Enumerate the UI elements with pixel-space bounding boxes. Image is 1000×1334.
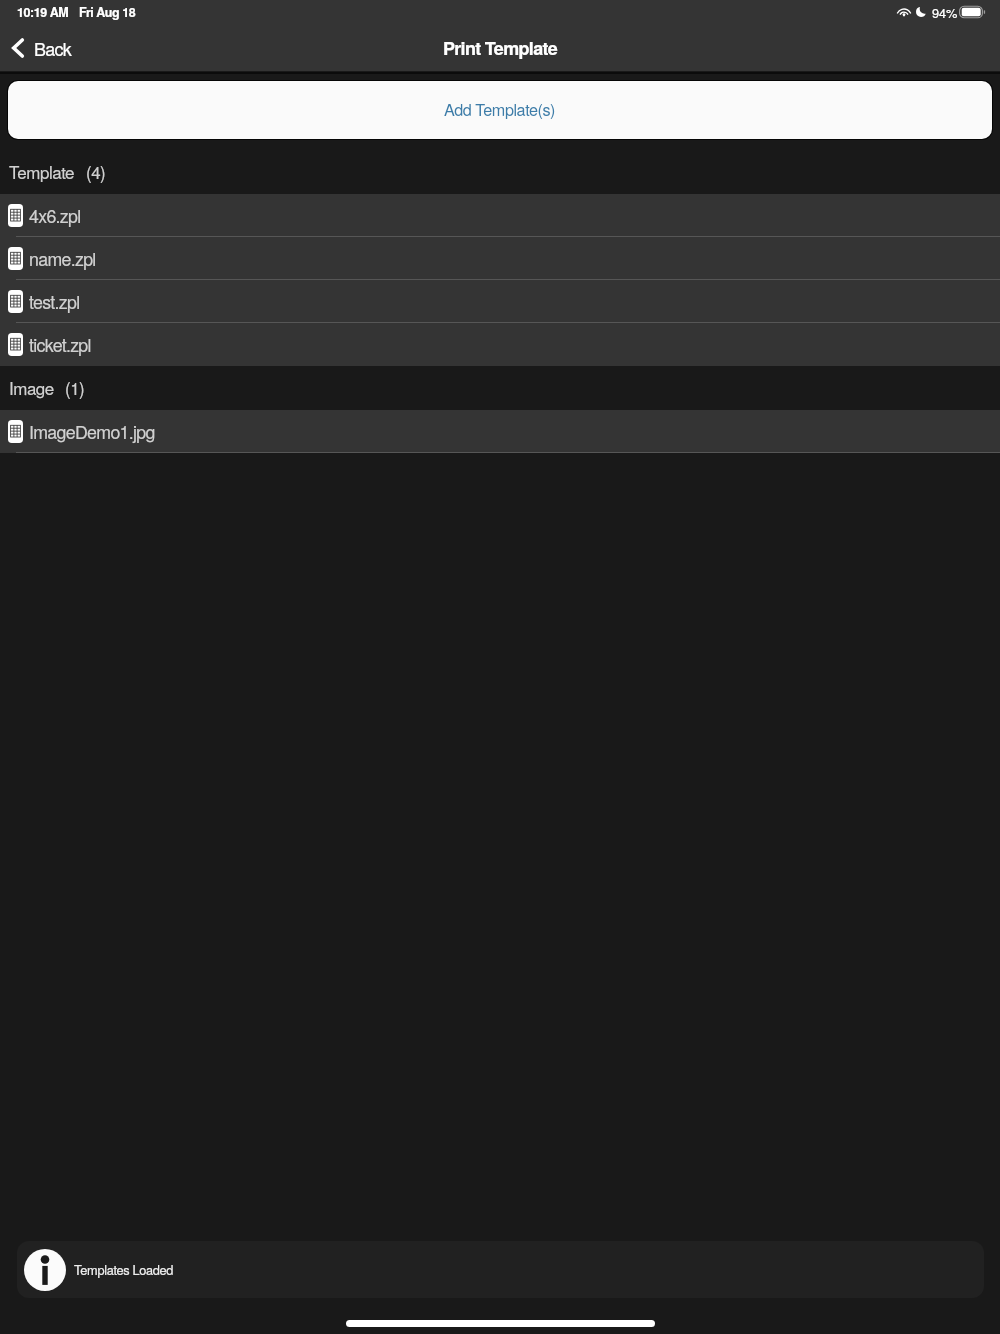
- staticText: 94%: [932, 3, 958, 21]
- button[interactable]: Templates Loaded: [17, 1241, 984, 1298]
- button[interactable]: Back: [0, 25, 79, 70]
- staticText: (4): [86, 159, 106, 183]
- button[interactable]: test.zpl: [0, 280, 1000, 323]
- staticText: Print Template: [443, 35, 557, 61]
- button[interactable]: name.zpl: [0, 237, 1000, 280]
- staticText: ImageDemo1.jpg: [29, 419, 155, 444]
- staticText: (1): [65, 375, 85, 399]
- button[interactable]: 4x6.zpl: [0, 194, 1000, 237]
- staticText: name.zpl: [29, 246, 96, 271]
- staticText: test.zpl: [29, 289, 80, 314]
- staticText: 4x6.zpl: [29, 203, 81, 228]
- button[interactable]: ImageDemo1.jpg: [0, 410, 1000, 453]
- button[interactable]: Add Template(s): [8, 81, 992, 139]
- staticText: Image: [9, 375, 54, 399]
- staticText: Fri Aug 18: [79, 3, 136, 21]
- other: Back: [8, 36, 28, 60]
- button[interactable]: ticket.zpl: [0, 323, 1000, 366]
- staticText: Add Template(s): [444, 97, 556, 120]
- staticText: ticket.zpl: [29, 332, 91, 357]
- staticText: 10:19 AM: [17, 3, 69, 21]
- staticText: Templates Loaded: [74, 1260, 174, 1278]
- staticText: Template: [9, 159, 75, 183]
- staticText: Back: [34, 35, 71, 61]
